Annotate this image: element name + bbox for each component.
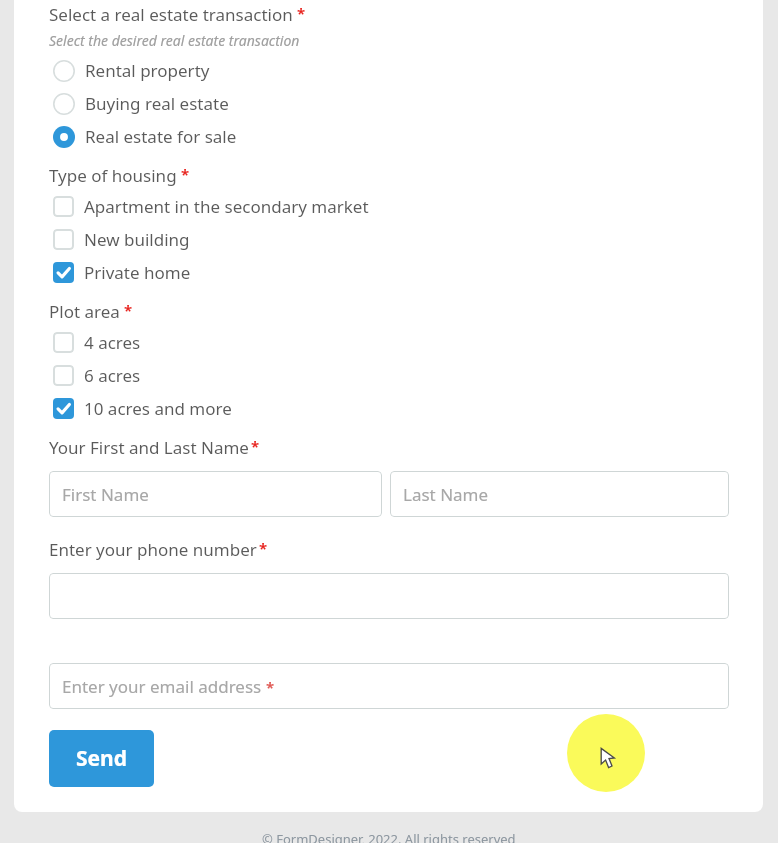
button[interactable]: Buying real estate — [49, 87, 729, 120]
other: Click indicator — [567, 714, 645, 792]
staticText: Select a real estate transaction — [49, 3, 293, 26]
staticText: Select the desired real estate transacti… — [49, 31, 300, 50]
button[interactable]: Real estate for sale — [49, 120, 729, 153]
staticText: * — [266, 677, 275, 697]
staticText: 6 acres — [84, 364, 141, 387]
staticText: © FormDesigner, 2022. All rights reserve… — [262, 830, 516, 843]
staticText: New building — [84, 228, 190, 251]
button[interactable]: Last Name — [390, 471, 729, 517]
button[interactable]: New building — [49, 223, 729, 256]
staticText: * — [181, 164, 190, 184]
button[interactable]: Rental property — [49, 54, 729, 87]
staticText: * — [297, 3, 306, 23]
staticText: Private home — [84, 261, 191, 284]
button[interactable]: Enter your email address — [49, 663, 729, 709]
button[interactable]: Private home — [49, 256, 729, 289]
staticText: Enter your email address — [62, 675, 262, 698]
button[interactable]: First Name — [49, 471, 382, 517]
staticText: Plot area — [49, 300, 120, 323]
staticText: Enter your phone number — [49, 538, 257, 561]
staticText: Type of housing — [49, 164, 177, 187]
button[interactable]: Send — [49, 730, 154, 787]
staticText: 4 acres — [84, 331, 141, 354]
staticText: Send — [76, 744, 128, 773]
staticText: 10 acres and more — [84, 397, 232, 420]
staticText: Your First and Last Name — [49, 436, 249, 459]
staticText: Rental property — [85, 59, 210, 82]
staticText: * — [124, 300, 133, 320]
button[interactable] — [49, 573, 729, 619]
staticText: Buying real estate — [85, 92, 229, 115]
staticText: First Name — [62, 483, 149, 506]
button[interactable]: Apartment in the secondary market — [49, 190, 729, 223]
staticText: Last Name — [403, 483, 489, 506]
button[interactable]: 4 acres — [49, 326, 729, 359]
button[interactable]: 10 acres and more — [49, 392, 729, 425]
staticText: Apartment in the secondary market — [84, 195, 369, 218]
staticText: * — [259, 538, 268, 558]
button[interactable]: 6 acres — [49, 359, 729, 392]
staticText: * — [251, 436, 260, 456]
staticText: Real estate for sale — [85, 125, 237, 148]
